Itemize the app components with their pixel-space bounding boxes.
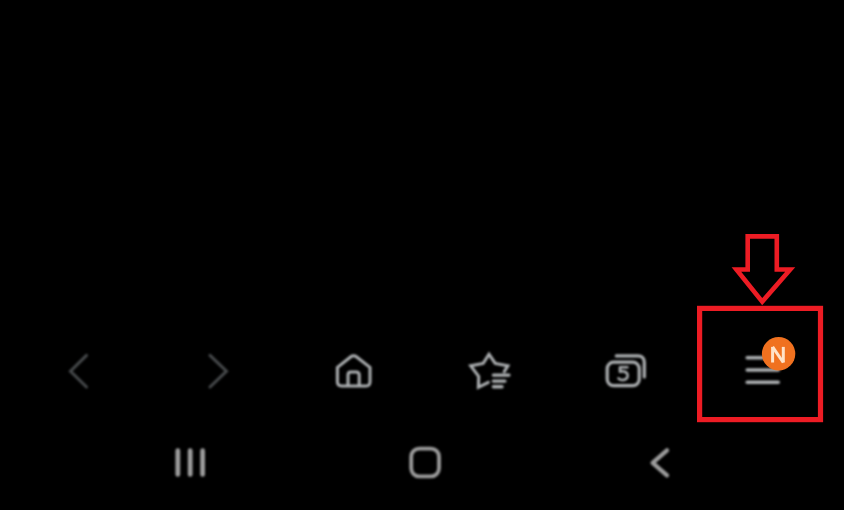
button[interactable]: Home xyxy=(334,352,372,390)
button[interactable]: Tabs, 5 open xyxy=(605,353,647,389)
button[interactable]: Bookmarks xyxy=(469,352,511,390)
button[interactable]: Recent apps xyxy=(170,446,210,480)
button[interactable]: Menu xyxy=(745,337,797,389)
button[interactable]: Forward xyxy=(201,352,235,390)
button[interactable]: Home xyxy=(407,445,443,481)
button[interactable]: Back xyxy=(61,352,95,390)
button[interactable]: Back xyxy=(645,446,675,480)
